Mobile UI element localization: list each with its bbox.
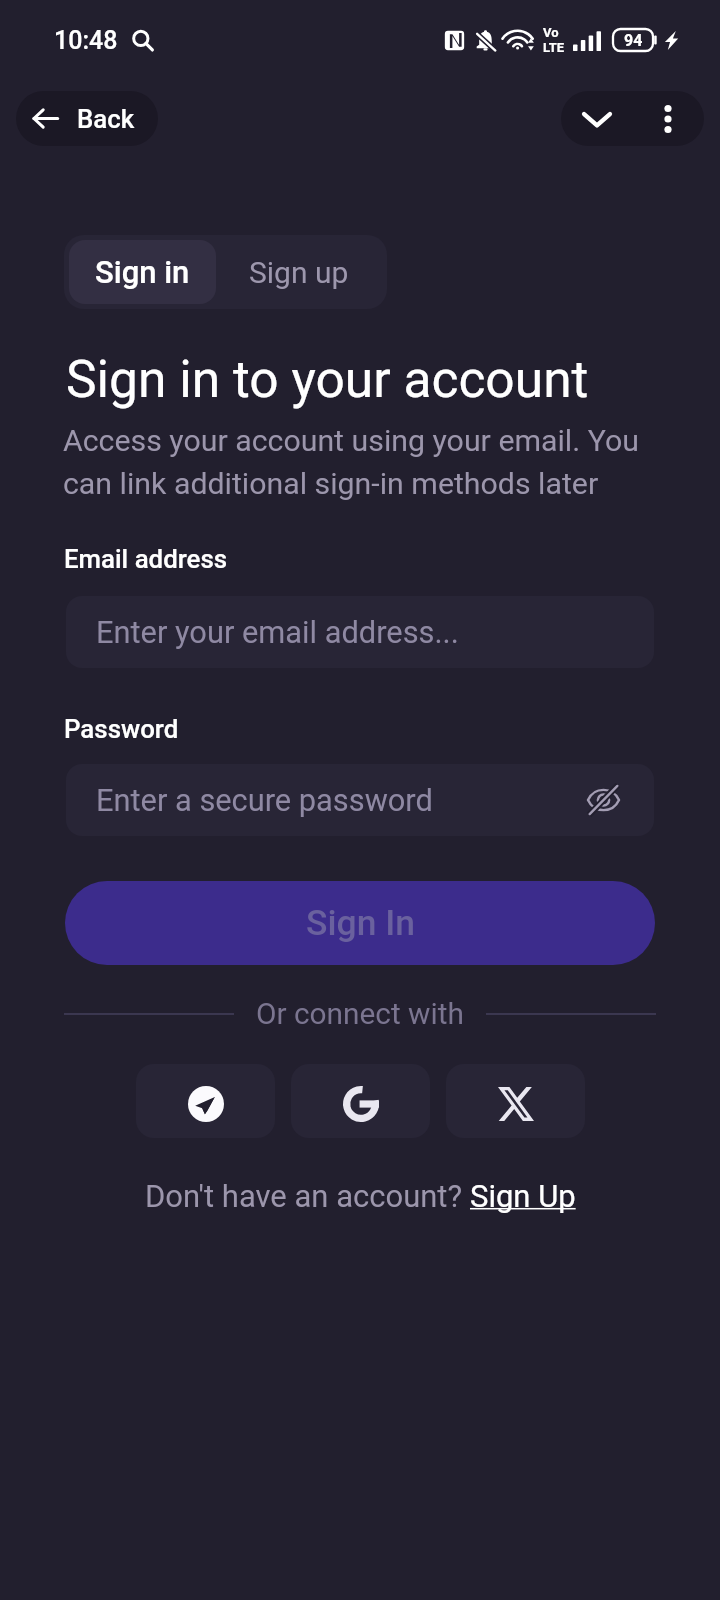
staticText: Access your account using your email. Yo…	[63, 423, 665, 502]
staticText: Or connect with	[256, 996, 464, 1031]
button[interactable]: Sign up	[216, 240, 382, 304]
button[interactable]: Sign Up	[470, 1178, 576, 1214]
button[interactable]: Sign In	[65, 881, 655, 965]
staticText: Vo	[543, 25, 559, 40]
button[interactable]: More options	[632, 91, 703, 146]
staticText: Password	[64, 714, 179, 744]
button[interactable]: Sign in	[69, 240, 216, 304]
button[interactable]: Back	[16, 91, 158, 146]
staticText: Sign in to your account	[66, 349, 589, 409]
staticText: Sign Up	[470, 1178, 576, 1214]
button[interactable]: Expand	[561, 91, 632, 146]
staticText: Sign In	[306, 902, 415, 944]
button[interactable]: Sign in with Telegram	[136, 1064, 275, 1138]
staticText: Don't have an account?	[145, 1178, 470, 1214]
button[interactable]: Sign in with Google	[291, 1064, 430, 1138]
button[interactable]: Enter a secure password	[66, 764, 654, 836]
staticText: Sign up	[249, 255, 349, 290]
staticText: LTE	[543, 40, 565, 55]
staticText: Sign in	[95, 254, 190, 290]
staticText: Enter a secure password	[96, 782, 433, 818]
button[interactable]: Enter your email address...	[66, 596, 654, 668]
staticText: 94	[624, 31, 643, 50]
button[interactable]: Sign in with X	[446, 1064, 585, 1138]
staticText: Back	[77, 104, 135, 134]
staticText: Enter your email address...	[96, 614, 459, 650]
staticText: Email address	[64, 544, 228, 574]
staticText: 10:48	[54, 26, 118, 55]
